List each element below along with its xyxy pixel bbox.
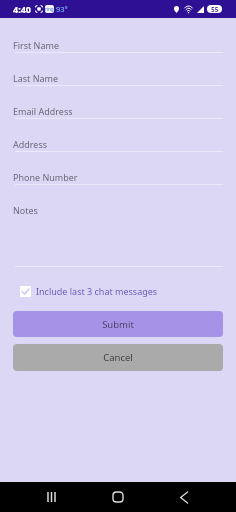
staticText: ring [45,6,54,12]
button[interactable]: Cancel [13,344,223,371]
button[interactable]: Notes [0,194,236,271]
staticText: First Name [13,39,59,51]
staticText: Phone Number [13,171,78,183]
button[interactable]: First Name [0,29,236,62]
button[interactable]: Recents [31,482,71,512]
staticText: 55 [211,5,219,13]
button[interactable]: Home [98,482,138,512]
staticText: Notes [13,204,38,216]
button[interactable]: Phone Number [0,161,236,194]
staticText: 93° [56,4,68,14]
button[interactable]: Last Name [0,62,236,95]
staticText: Last Name [13,72,59,84]
button[interactable]: Include last 3 chat messages [20,283,236,299]
button[interactable]: Submit [13,311,223,337]
button[interactable]: Back [164,482,204,512]
staticText: 4:40 [13,3,31,15]
staticText: Submit [102,318,134,331]
staticText: Cancel [103,351,133,364]
button[interactable]: Address [0,128,236,161]
button[interactable]: Email Address [0,95,236,128]
staticText: Address [13,138,48,150]
staticText: Email Address [13,105,73,117]
staticText: Include last 3 chat messages [36,285,158,297]
